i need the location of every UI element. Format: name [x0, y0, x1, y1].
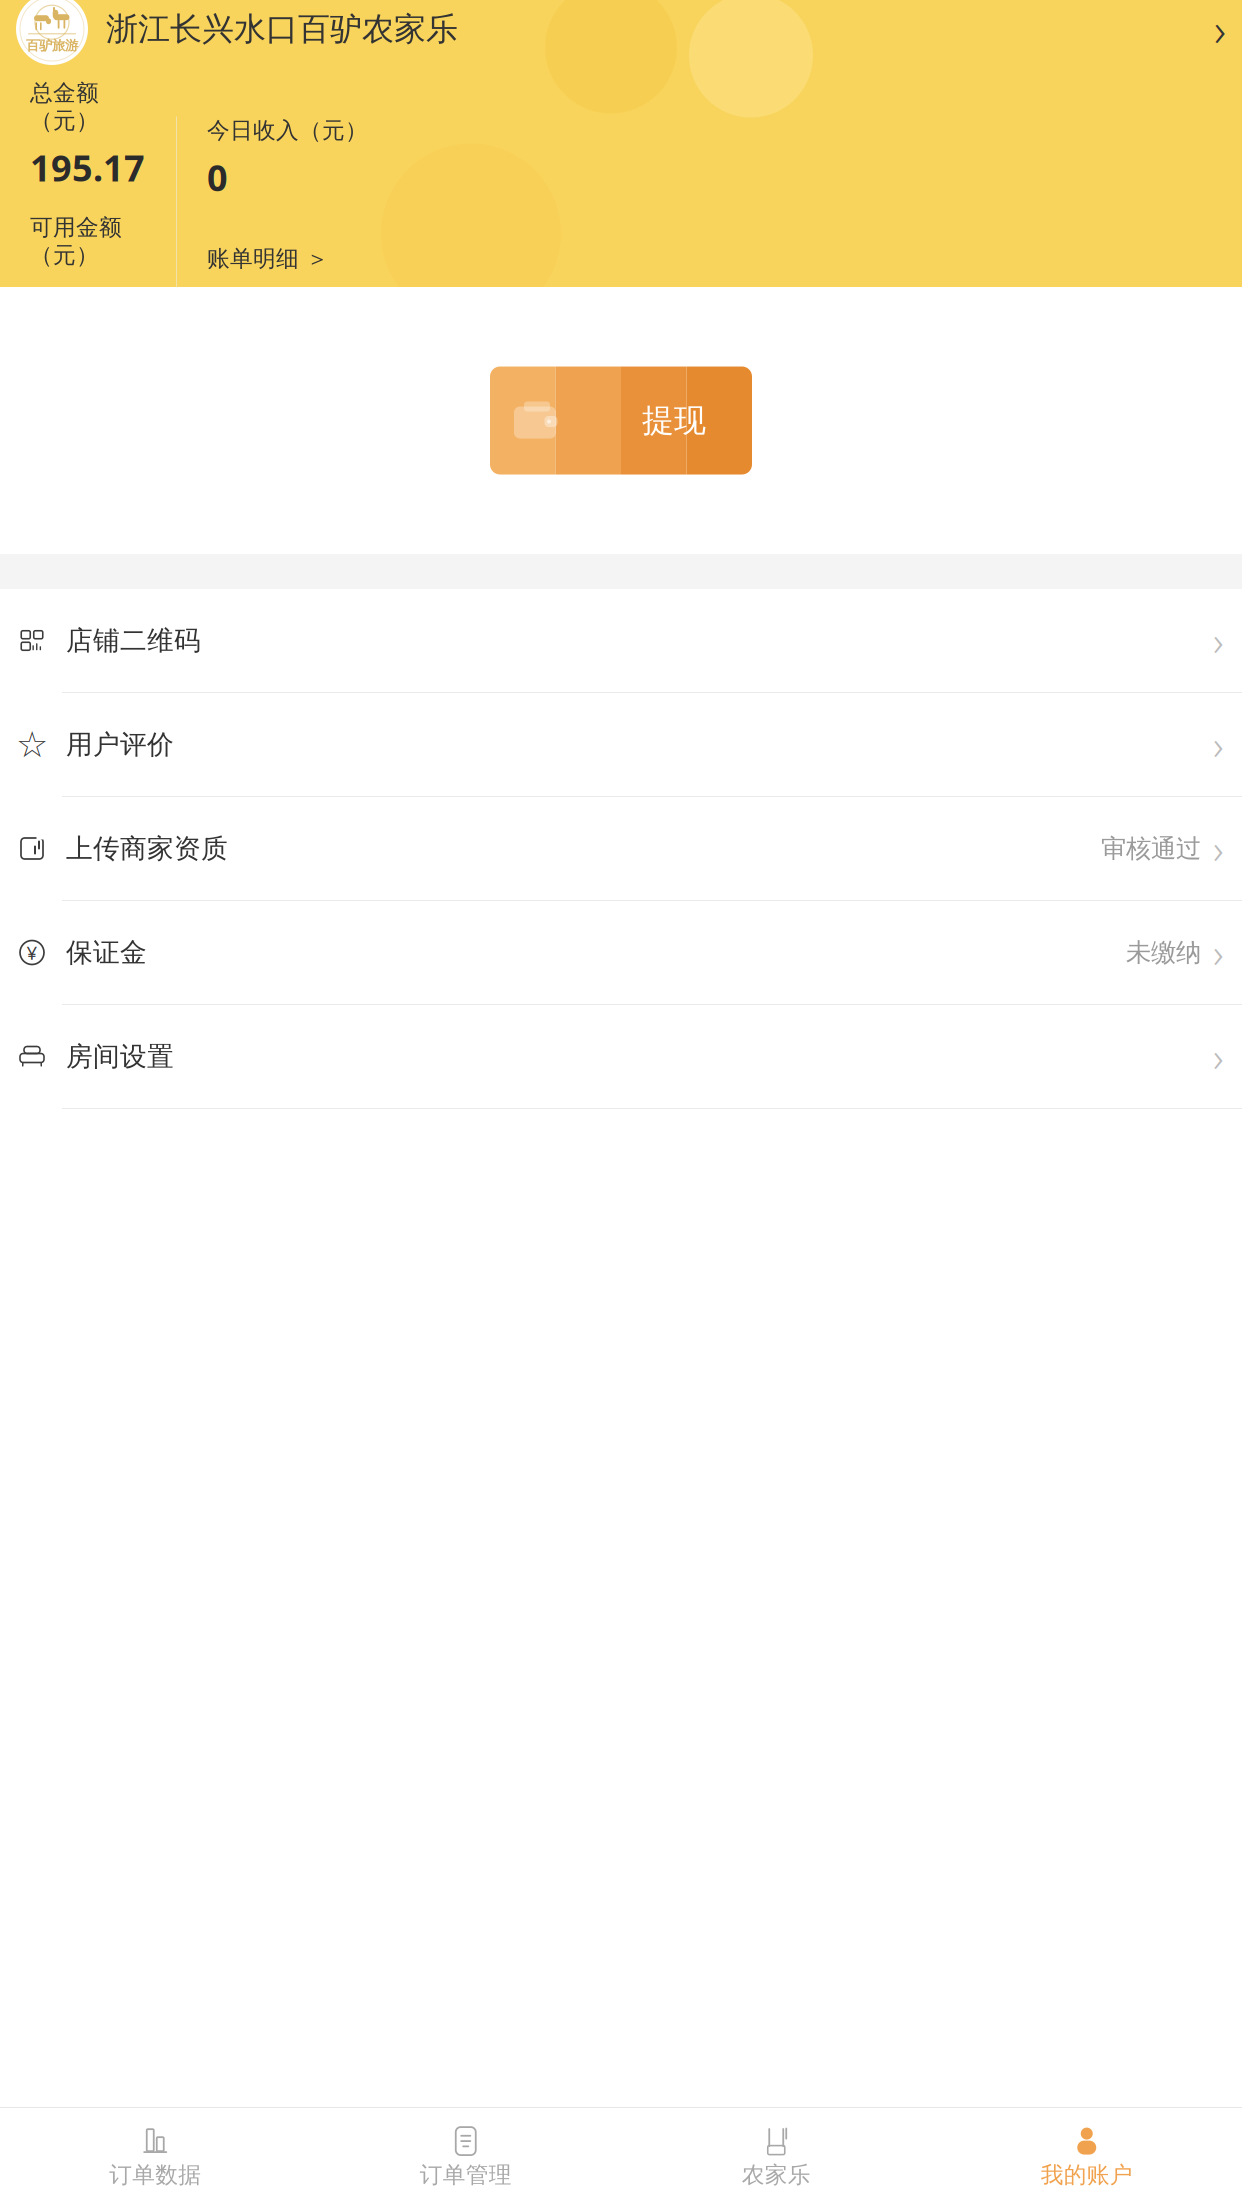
staticText: ¥	[26, 940, 37, 965]
staticText: ›	[1213, 1030, 1224, 1083]
staticText: ›	[1213, 718, 1224, 771]
button[interactable]: 订单数据	[0, 2117, 310, 2199]
staticText: 提现	[642, 401, 706, 440]
staticText: 我的账户	[1041, 2161, 1133, 2189]
staticText: 上传商家资质	[66, 832, 228, 865]
staticText: ›	[1214, 0, 1226, 59]
staticText: ›	[1213, 614, 1224, 667]
staticText: 195.17	[30, 144, 145, 191]
staticText: 320.79	[30, 278, 145, 326]
staticText: 农家乐	[742, 2161, 811, 2189]
staticText: 保证金	[66, 936, 147, 969]
staticText: 百驴旅游	[26, 37, 78, 54]
button[interactable]: 上传商家资质	[0, 797, 1242, 900]
staticText: ☆	[16, 724, 48, 765]
staticText: 店铺二维码	[66, 624, 201, 657]
staticText: 订单管理	[420, 2161, 512, 2189]
staticText: ›	[1213, 822, 1224, 875]
button[interactable]: ¥	[0, 901, 1242, 1004]
staticText: 未缴纳	[1126, 937, 1201, 968]
staticText: 0	[207, 153, 228, 201]
staticText: 订单数据	[109, 2161, 201, 2189]
button[interactable]: 我的账户	[931, 2117, 1242, 2199]
staticText: 可用金额（元）	[30, 213, 122, 269]
staticText: 房间设置	[66, 1040, 174, 1073]
staticText: 审核通过	[1101, 833, 1201, 864]
staticText: 总金额（元）	[30, 79, 99, 135]
button[interactable]: 房间设置	[0, 1005, 1242, 1108]
button[interactable]: 百驴旅游	[0, 0, 1242, 79]
button[interactable]: ☆	[0, 693, 1242, 796]
button[interactable]: 订单管理	[310, 2117, 621, 2199]
button[interactable]: 提现	[490, 366, 752, 474]
staticText: 浙江长兴水口百驴农家乐	[106, 9, 458, 49]
button[interactable]: 账单明细 ＞	[207, 245, 329, 272]
staticText: 今日收入（元）	[207, 116, 368, 144]
button[interactable]: 店铺二维码	[0, 589, 1242, 692]
button[interactable]: 农家乐	[621, 2117, 931, 2199]
staticText: ›	[1213, 926, 1224, 979]
staticText: 用户评价	[66, 728, 174, 761]
staticText: 账单明细 ＞	[207, 245, 329, 272]
